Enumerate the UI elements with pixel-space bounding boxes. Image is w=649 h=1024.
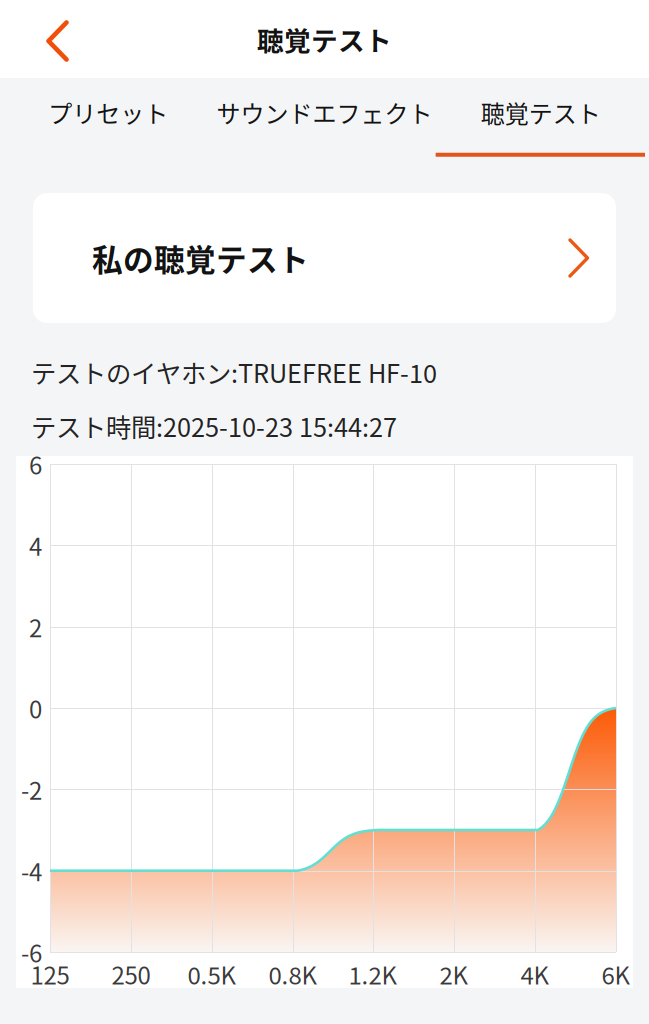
staticText: 6 [29,447,42,481]
staticText: 4K [520,957,549,991]
staticText: 125 [30,957,69,991]
staticText: テストのイヤホン:TRUEFREE HF-10 [31,354,437,390]
staticText: 0 [29,691,42,725]
staticText: -2 [21,772,42,807]
staticText: 250 [111,957,150,991]
staticText: プリセット [48,95,168,130]
staticText: 2K [439,957,468,991]
button[interactable]: サウンドエフェクト [216,78,433,170]
staticText: 聴覚テスト [481,95,601,130]
staticText: 6K [601,957,630,991]
staticText: -4 [21,853,42,888]
button[interactable]: Back [0,2,87,76]
staticText: サウンドエフェクト [216,95,432,130]
staticText: 0.5K [187,957,236,991]
staticText: 0.8K [268,957,317,991]
staticText: 聴覚テスト [257,20,392,58]
staticText: 2 [29,609,42,644]
staticText: 4 [29,528,42,563]
button[interactable]: 聴覚テスト [433,78,649,170]
staticText: 私の聴覚テスト [92,236,309,280]
staticText: -6 [21,935,42,969]
button[interactable]: プリセット [0,78,216,170]
staticText: 1.2K [348,957,397,991]
staticText: テスト時間:2025-10-23 15:44:27 [31,408,397,444]
button[interactable]: 私の聴覚テスト [33,193,616,323]
